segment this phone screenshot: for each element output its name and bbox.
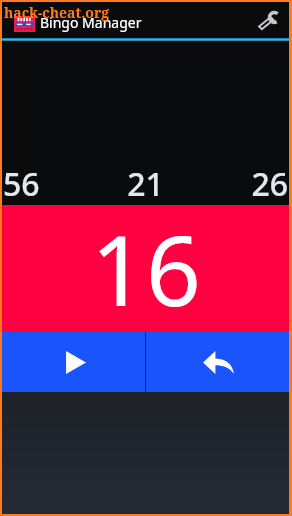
button[interactable]: Bingo Manager [2, 2, 150, 38]
staticText: 56 [3, 162, 98, 200]
button[interactable]: Play [2, 332, 145, 392]
button[interactable]: Settings [249, 2, 289, 38]
staticText: hack-cheat.org [4, 3, 110, 22]
staticText: Bingo Manager [40, 13, 142, 32]
staticText: 21 [98, 162, 193, 200]
button[interactable]: 16 [2, 205, 289, 332]
staticText: 26 [193, 162, 288, 200]
staticText: 16 [91, 203, 201, 330]
button[interactable]: Undo [146, 332, 289, 392]
